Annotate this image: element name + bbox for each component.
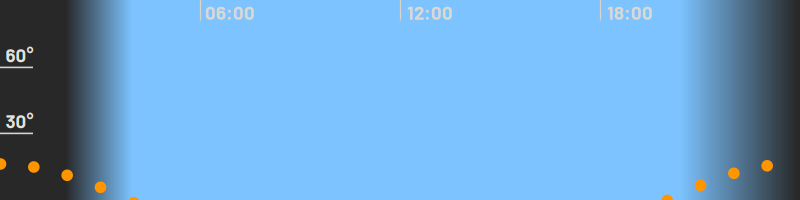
staticText: 12:00 xyxy=(407,1,453,23)
staticText: 30° xyxy=(5,109,33,132)
staticText: 60° xyxy=(5,43,33,66)
staticText: 06:00 xyxy=(205,1,255,23)
staticText: 18:00 xyxy=(607,1,653,23)
